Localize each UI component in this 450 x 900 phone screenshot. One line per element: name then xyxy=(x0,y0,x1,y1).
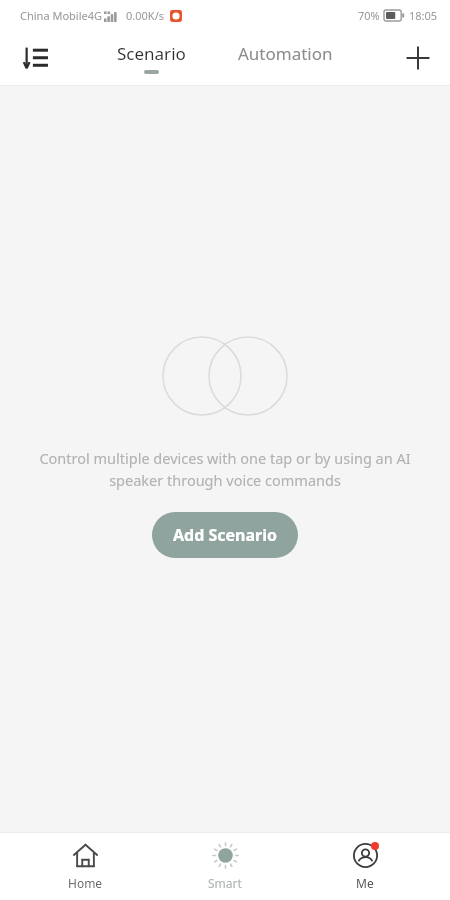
staticText: Me xyxy=(356,875,374,891)
staticText: 0.00K/s xyxy=(126,8,164,23)
staticText: 70% xyxy=(358,8,380,23)
staticText: Add Scenario xyxy=(173,524,278,546)
button[interactable]: Home xyxy=(30,836,140,897)
button[interactable]: Scenario xyxy=(105,36,198,80)
staticText: Scenario xyxy=(117,42,186,65)
button[interactable]: Add Scenario xyxy=(152,512,298,558)
staticText: 18:05 xyxy=(409,8,438,23)
button[interactable]: Sort xyxy=(14,36,58,80)
button[interactable]: Me xyxy=(310,836,420,897)
staticText: Home xyxy=(68,875,103,891)
staticText: Automation xyxy=(238,42,333,65)
button[interactable]: Smart xyxy=(170,836,280,897)
button[interactable]: Add xyxy=(396,36,440,80)
staticText: Control multiple devices with one tap or… xyxy=(26,448,424,490)
staticText: Smart xyxy=(208,875,242,891)
button[interactable]: Automation xyxy=(226,36,345,80)
staticText: China Mobile4G xyxy=(20,8,102,23)
